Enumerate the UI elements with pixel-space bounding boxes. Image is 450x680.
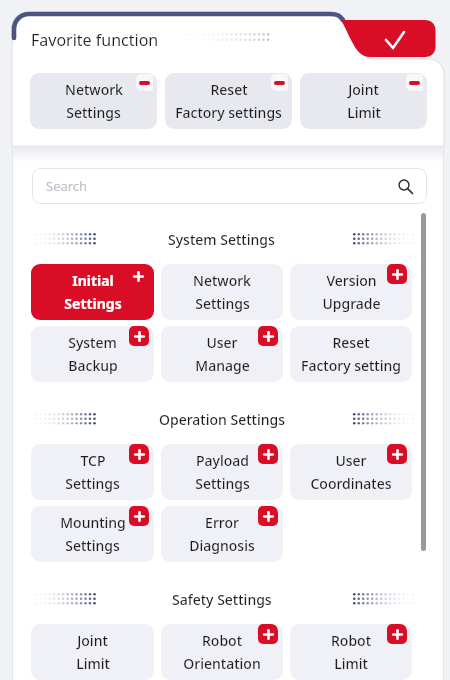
staticText: Robot [331, 631, 371, 650]
staticText: Joint [348, 80, 379, 99]
staticText: Backup [68, 356, 118, 375]
button[interactable]: Initial [31, 264, 154, 320]
button[interactable]: Reset [165, 73, 292, 129]
other: Search [398, 179, 413, 194]
staticText: Reset [332, 333, 370, 352]
staticText: Operation Settings [159, 410, 285, 429]
button[interactable]: Payload [161, 444, 283, 500]
staticText: Network [65, 80, 123, 99]
staticText: Factory setting [301, 356, 401, 375]
button[interactable]: Search [32, 168, 427, 204]
button[interactable]: TCP [31, 444, 154, 500]
staticText: TCP [80, 451, 106, 470]
staticText: Reset [210, 80, 248, 99]
button[interactable]: System [31, 326, 154, 382]
staticText: Joint [77, 631, 108, 650]
staticText: Search [46, 177, 88, 195]
staticText: Settings [66, 103, 121, 122]
button[interactable]: Network [30, 73, 157, 129]
staticText: Limit [334, 654, 368, 673]
staticText: Robot [202, 631, 242, 650]
staticText: Settings [65, 474, 120, 493]
button[interactable]: Reset [290, 326, 412, 382]
staticText: Diagnosis [189, 536, 255, 555]
staticText: Factory settings [175, 103, 282, 122]
button[interactable]: Mounting [31, 506, 154, 562]
staticText: Upgrade [322, 294, 381, 313]
staticText: Settings [64, 294, 122, 313]
button[interactable]: Robot [290, 624, 412, 680]
staticText: Initial [72, 271, 114, 290]
staticText: Mounting [60, 513, 126, 532]
staticText: Settings [65, 536, 120, 555]
staticText: Orientation [183, 654, 261, 673]
button[interactable]: Joint [300, 73, 427, 129]
staticText: Limit [76, 654, 110, 673]
button[interactable]: Network [161, 264, 283, 320]
staticText: Error [205, 513, 239, 532]
staticText: User [335, 451, 367, 470]
staticText: Favorite function [31, 29, 159, 51]
button[interactable]: User [161, 326, 283, 382]
button[interactable]: Version [290, 264, 412, 320]
staticText: Coordinates [310, 474, 392, 493]
staticText: Safety Settings [172, 590, 272, 609]
staticText: Network [193, 271, 251, 290]
button[interactable]: Joint [31, 624, 154, 680]
staticText: System [68, 333, 117, 352]
button[interactable]: Error [161, 506, 283, 562]
staticText: System Settings [168, 230, 275, 249]
staticText: Settings [195, 294, 250, 313]
staticText: Limit [347, 103, 381, 122]
button[interactable]: User [290, 444, 412, 500]
button[interactable]: Robot [161, 624, 283, 680]
staticText: User [206, 333, 238, 352]
staticText: Payload [196, 451, 249, 470]
staticText: Manage [195, 356, 250, 375]
staticText: Settings [195, 474, 250, 493]
staticText: Version [326, 271, 377, 290]
